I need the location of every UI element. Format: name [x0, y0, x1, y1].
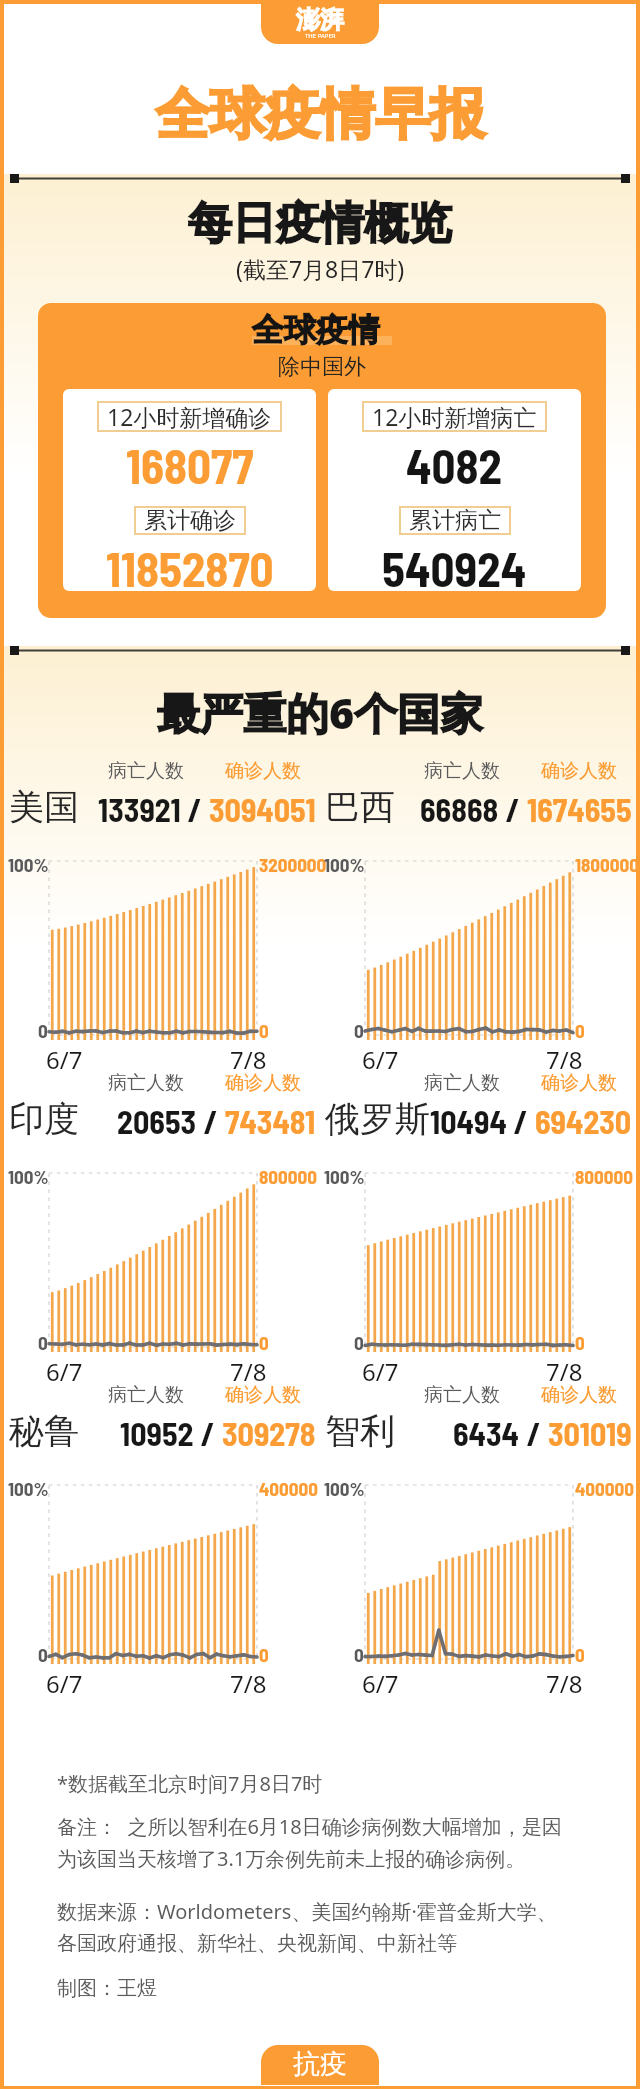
button[interactable]: 12小时新增病亡: [328, 389, 581, 591]
staticText: /: [520, 1414, 548, 1452]
staticText: THE PAPER: [305, 32, 336, 40]
staticText: 最严重的6个国家: [157, 683, 484, 742]
staticText: 11852870: [106, 540, 274, 591]
staticText: 7/8: [230, 1043, 267, 1076]
staticText: /: [181, 790, 209, 828]
staticText: 巴西: [325, 785, 395, 829]
staticText: 数据来源：Worldometers、美国约翰斯·霍普金斯大学、各国政府通报、新华…: [57, 1898, 569, 1956]
staticText: 0: [354, 1331, 364, 1354]
staticText: 确诊人数: [225, 1071, 301, 1095]
button[interactable]: The Paper logo: [261, 4, 379, 44]
button[interactable]: 全球疫情: [38, 303, 606, 618]
staticText: 秘鲁: [9, 1409, 79, 1453]
staticText: 20653: [117, 1102, 197, 1140]
staticText: 694230: [535, 1102, 632, 1140]
staticText: 0: [354, 1643, 364, 1666]
staticText: 7/8: [546, 1667, 583, 1700]
staticText: 6/7: [46, 1355, 83, 1388]
staticText: 0: [259, 1643, 269, 1666]
staticText: 0: [575, 1331, 585, 1354]
staticText: 6/7: [362, 1043, 399, 1076]
staticText: 0: [38, 1019, 48, 1042]
staticText: 3200000: [259, 853, 327, 876]
staticText: 100%: [324, 1165, 365, 1188]
staticText: 6434: [453, 1414, 520, 1452]
staticText: 病亡人数: [424, 1383, 500, 1407]
staticText: 确诊人数: [541, 759, 617, 783]
staticText: 100%: [8, 1165, 49, 1188]
staticText: 病亡人数: [108, 759, 184, 783]
staticText: 540924: [382, 540, 527, 591]
staticText: 6/7: [362, 1355, 399, 1388]
staticText: 备注： 之所以智利在6月18日确诊病例数大幅增加，是因为该国当天核增了3.1万余…: [57, 1813, 569, 1872]
staticText: (截至7月8日7时): [236, 253, 405, 284]
staticText: 400000: [259, 1477, 318, 1500]
staticText: 100%: [8, 853, 49, 876]
staticText: 100%: [324, 1477, 365, 1500]
staticText: 6/7: [46, 1667, 83, 1700]
staticText: 确诊人数: [225, 1383, 301, 1407]
staticText: 病亡人数: [108, 1383, 184, 1407]
staticText: 133921: [98, 790, 181, 828]
staticText: 800000: [259, 1165, 317, 1188]
staticText: 累计病亡: [409, 506, 501, 535]
staticText: 100%: [324, 853, 365, 876]
staticText: 美国: [9, 785, 79, 829]
staticText: /: [499, 790, 527, 828]
staticText: 除中国外: [278, 353, 366, 381]
staticText: 0: [575, 1019, 585, 1042]
staticText: 800000: [575, 1165, 633, 1188]
staticText: 7/8: [546, 1043, 583, 1076]
staticText: 病亡人数: [424, 1071, 500, 1095]
staticText: /: [507, 1102, 535, 1140]
staticText: 0: [38, 1331, 48, 1354]
button[interactable]: 抗疫: [261, 2045, 379, 2085]
staticText: 累计确诊: [144, 506, 236, 535]
staticText: 743481: [225, 1102, 316, 1140]
staticText: 12小时新增病亡: [372, 401, 537, 432]
staticText: 168077: [126, 437, 254, 493]
staticText: 病亡人数: [424, 759, 500, 783]
staticText: 病亡人数: [108, 1071, 184, 1095]
staticText: 7/8: [230, 1355, 267, 1388]
staticText: 确诊人数: [541, 1071, 617, 1095]
staticText: 10494: [430, 1102, 507, 1140]
staticText: 7/8: [230, 1667, 267, 1700]
staticText: 301019: [548, 1414, 632, 1452]
staticText: 100%: [8, 1477, 49, 1500]
staticText: 3094051: [209, 790, 316, 828]
staticText: 0: [259, 1331, 269, 1354]
staticText: /: [194, 1414, 222, 1452]
staticText: 4082: [406, 437, 503, 493]
staticText: 全球疫情: [252, 310, 380, 350]
staticText: 抗疫: [293, 2047, 347, 2081]
staticText: 确诊人数: [225, 759, 301, 783]
staticText: 印度: [9, 1097, 79, 1141]
staticText: /: [197, 1102, 225, 1140]
staticText: 俄罗斯: [325, 1097, 430, 1141]
staticText: *数据截至北京时间7月8日7时: [57, 1770, 323, 1797]
staticText: 1674655: [527, 790, 632, 828]
staticText: 309278: [222, 1414, 316, 1452]
staticText: 每日疫情概览: [188, 196, 452, 251]
staticText: 1800000: [575, 853, 639, 876]
staticText: 澎湃: [296, 5, 344, 35]
staticText: 制图：王煜: [57, 1976, 157, 2001]
button[interactable]: 12小时新增确诊: [63, 389, 316, 591]
staticText: 7/8: [546, 1355, 583, 1388]
staticText: 400000: [575, 1477, 634, 1500]
staticText: 6/7: [362, 1667, 399, 1700]
staticText: 66868: [420, 790, 499, 828]
staticText: 0: [259, 1019, 269, 1042]
staticText: 全球疫情早报: [155, 80, 485, 149]
staticText: 12小时新增确诊: [107, 401, 272, 432]
staticText: 智利: [325, 1409, 395, 1453]
staticText: 10952: [120, 1414, 194, 1452]
staticText: 0: [38, 1643, 48, 1666]
staticText: 确诊人数: [541, 1383, 617, 1407]
staticText: 0: [575, 1643, 585, 1666]
staticText: 6/7: [46, 1043, 83, 1076]
staticText: 0: [354, 1019, 364, 1042]
